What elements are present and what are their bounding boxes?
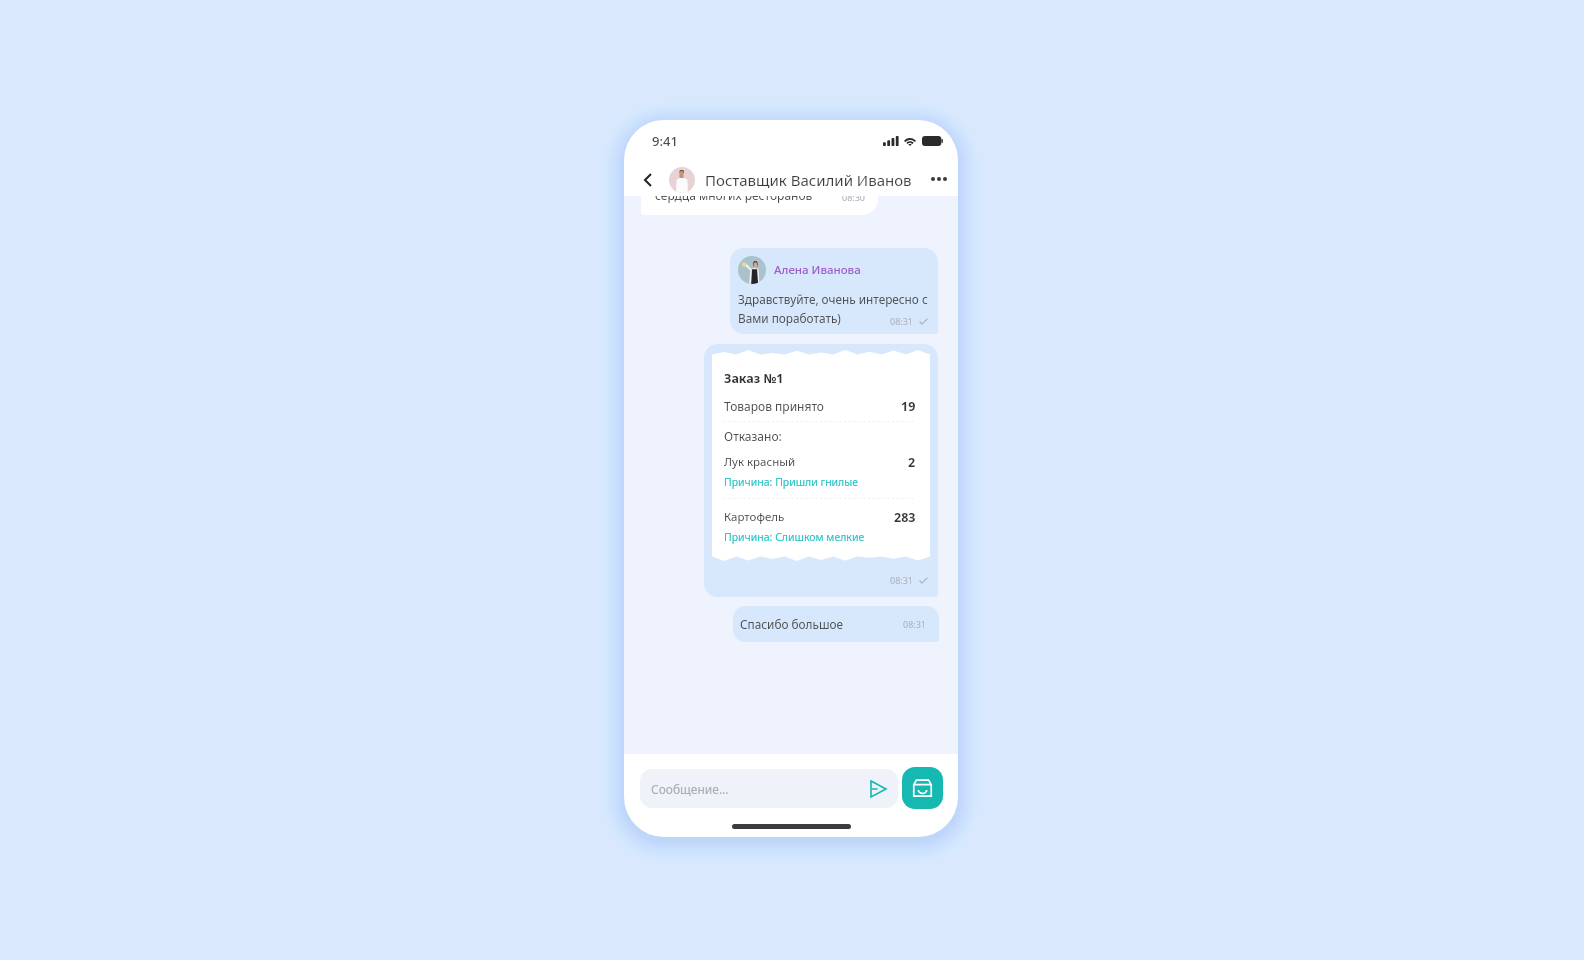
- staticText: Алена Иванова: [774, 262, 861, 278]
- button[interactable]: Send: [866, 777, 890, 801]
- button[interactable]: Алена Иванова: [730, 248, 938, 334]
- button[interactable]: Create order: [902, 767, 943, 809]
- button[interactable]: Back: [638, 167, 658, 193]
- button[interactable]: Поставщик Василий Иванов: [669, 167, 912, 193]
- button[interactable]: сердца многих ресторанов: [641, 196, 878, 215]
- staticText: Спасибо большое: [740, 616, 843, 632]
- staticText: Заказ №1: [724, 370, 784, 387]
- staticText: Сообщение...: [651, 781, 729, 797]
- staticText: Товаров принято: [724, 398, 824, 414]
- staticText: 2: [908, 454, 916, 471]
- staticText: 9:41: [652, 132, 678, 150]
- staticText: 08:31: [903, 618, 927, 630]
- staticText: Лук красный: [724, 454, 796, 470]
- staticText: 19: [901, 398, 916, 415]
- staticText: Поставщик Василий Иванов: [705, 170, 912, 190]
- staticText: Причина: Слишком мелкие: [724, 530, 865, 544]
- staticText: 08:31: [890, 574, 914, 586]
- staticText: Картофель: [724, 509, 785, 525]
- staticText: 08:31: [890, 315, 914, 327]
- button[interactable]: More options: [928, 167, 950, 193]
- button[interactable]: Сообщение...: [640, 769, 898, 808]
- staticText: Отказано:: [724, 428, 782, 444]
- staticText: 283: [894, 509, 916, 526]
- staticText: сердца многих ресторанов: [655, 196, 813, 203]
- button[interactable]: Спасибо большое: [733, 606, 939, 642]
- staticText: Вами поработать): [738, 310, 841, 326]
- staticText: Причина: Пришли гнилые: [724, 475, 859, 489]
- button[interactable]: Заказ №1: [704, 344, 938, 597]
- staticText: Здравствуйте, очень интересно с: [738, 291, 928, 307]
- staticText: 08:30: [842, 196, 866, 203]
